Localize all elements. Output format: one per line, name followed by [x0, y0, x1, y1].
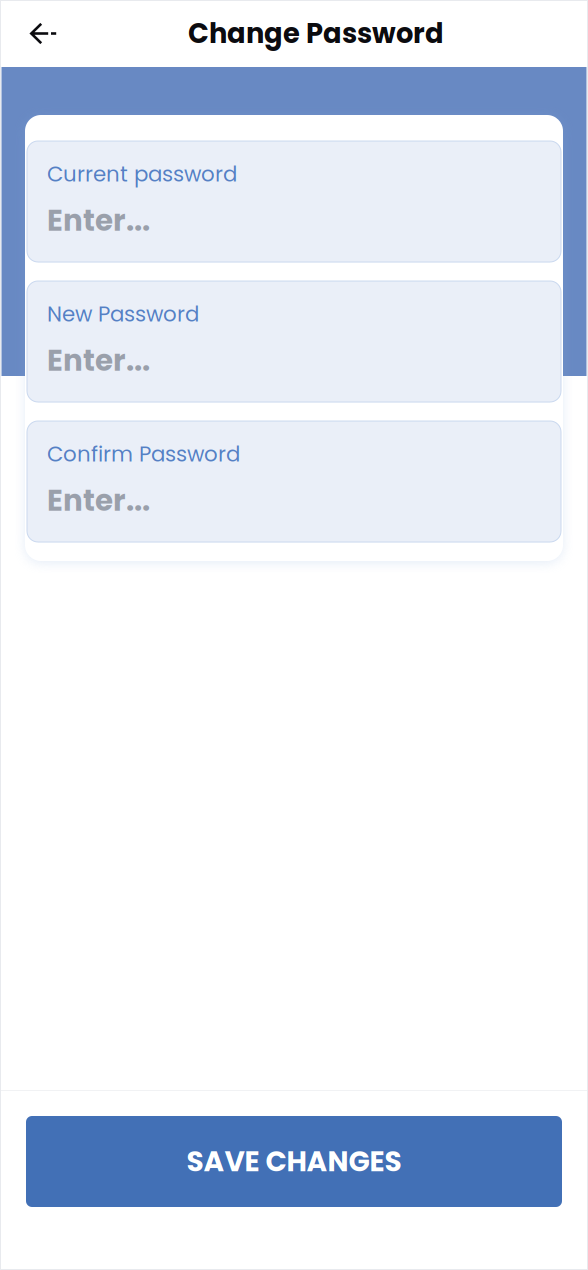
- button[interactable]: Back: [0, 0, 66, 67]
- button[interactable]: Current password: [27, 141, 561, 262]
- staticText: Enter...: [47, 200, 150, 241]
- staticText: Change Password: [188, 14, 444, 53]
- staticText: New Password: [47, 299, 199, 329]
- staticText: SAVE CHANGES: [186, 1142, 401, 1181]
- button[interactable]: SAVE CHANGES: [26, 1116, 562, 1207]
- button[interactable]: Confirm Password: [27, 421, 561, 542]
- staticText: Confirm Password: [47, 439, 240, 469]
- staticText: Enter...: [47, 480, 150, 521]
- staticText: Current password: [47, 159, 237, 189]
- staticText: Enter...: [47, 340, 150, 381]
- button[interactable]: New Password: [27, 281, 561, 402]
